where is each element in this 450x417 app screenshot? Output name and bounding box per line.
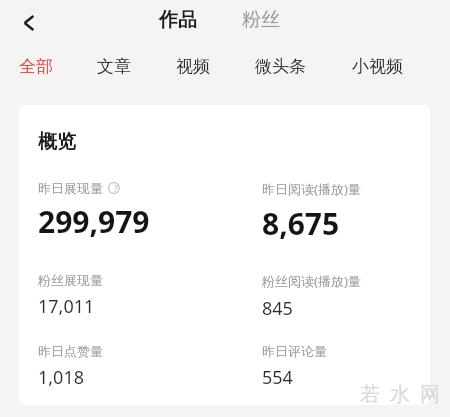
button[interactable]: 视频 <box>170 51 216 82</box>
button[interactable]: 文章 <box>91 51 137 82</box>
staticText: 1,018 <box>38 365 85 390</box>
button[interactable]: 全部 <box>13 51 59 82</box>
staticText: 昨日展现量 <box>38 180 103 196</box>
staticText: 299,979 <box>38 201 150 242</box>
staticText: 粉丝展现量 <box>38 272 103 288</box>
staticText: 概览 <box>38 130 76 154</box>
staticText: 作品 <box>159 8 197 32</box>
staticText: 全部 <box>19 56 53 77</box>
staticText: 网 <box>420 382 440 407</box>
staticText: 水 <box>390 382 410 407</box>
button[interactable]: 小视频 <box>346 51 409 82</box>
staticText: ? <box>110 182 122 194</box>
button[interactable]: 粉丝 <box>238 5 284 35</box>
staticText: 视频 <box>176 56 210 77</box>
staticText: 554 <box>262 365 293 390</box>
button[interactable]: 微头条 <box>249 51 312 82</box>
staticText: 微头条 <box>255 56 306 77</box>
staticText: 8,675 <box>262 203 340 244</box>
staticText: 昨日点赞量 <box>38 343 103 359</box>
button[interactable]: 作品 <box>155 5 201 35</box>
staticText: 文章 <box>97 56 131 77</box>
staticText: 粉丝阅读(播放)量 <box>262 272 361 290</box>
staticText: 小视频 <box>352 56 403 77</box>
staticText: 17,011 <box>38 294 95 319</box>
button[interactable]: Back <box>10 4 48 42</box>
staticText: 845 <box>262 296 293 321</box>
staticText: 昨日评论量 <box>262 343 327 359</box>
staticText: 粉丝 <box>242 8 280 32</box>
staticText: 若 <box>360 382 380 407</box>
staticText: 昨日阅读(播放)量 <box>262 180 361 198</box>
